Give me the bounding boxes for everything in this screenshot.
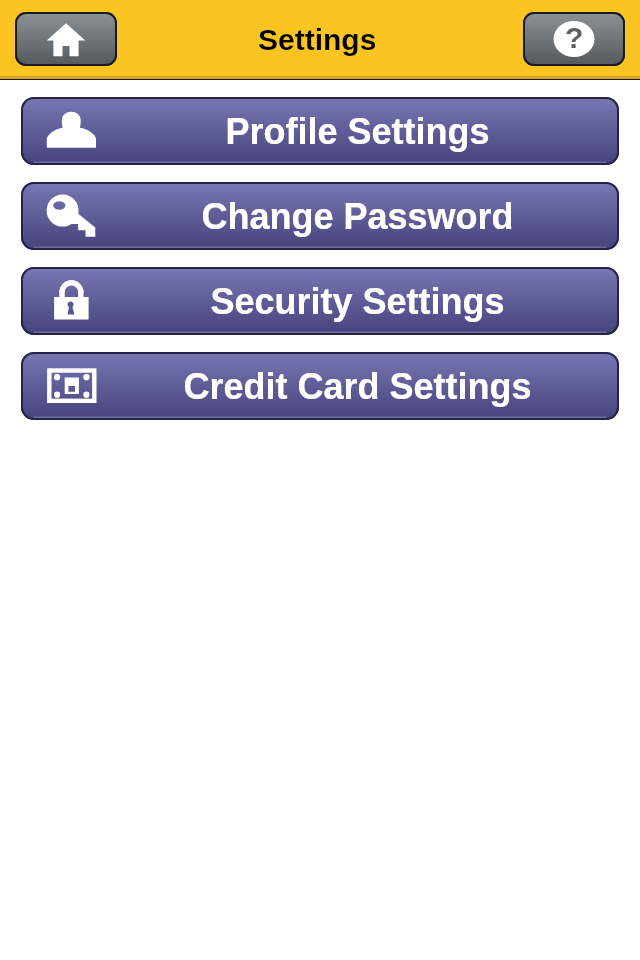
staticText: Credit Card Settings [183, 366, 532, 406]
staticText: ? [565, 21, 584, 55]
button[interactable]: Change Password [21, 182, 619, 250]
staticText: Profile Settings [225, 111, 490, 151]
button[interactable]: Security Settings [21, 267, 619, 335]
button[interactable]: Home [15, 12, 117, 66]
staticText: Change Password [201, 196, 514, 236]
staticText: Settings [258, 23, 377, 57]
button[interactable]: Credit Card Settings [21, 352, 619, 420]
button[interactable]: Profile Settings [21, 97, 619, 165]
button[interactable]: Help [523, 12, 625, 66]
staticText: Security Settings [210, 281, 505, 321]
